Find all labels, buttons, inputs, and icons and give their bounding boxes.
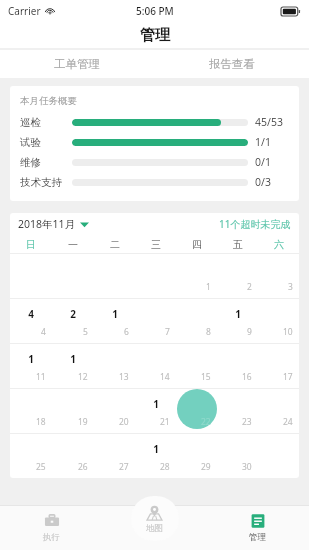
staticText: 工单管理 [54, 57, 100, 71]
button[interactable]: 2 [52, 299, 94, 343]
button[interactable]: 14 [135, 344, 176, 388]
staticText: 22 [201, 416, 211, 428]
staticText: 10 [283, 326, 293, 338]
staticText: 11 [36, 371, 46, 383]
button[interactable]: 27 [94, 434, 135, 478]
staticText: 9 [247, 326, 252, 338]
button[interactable]: 1 [135, 389, 176, 433]
button[interactable]: 19 [52, 389, 94, 433]
staticText: 维修 [20, 156, 41, 169]
button[interactable]: 22 [176, 389, 217, 433]
staticText: 六 [274, 238, 284, 251]
staticText: 17 [283, 371, 293, 383]
staticText: 2018年11月 [18, 217, 76, 231]
button[interactable]: 13 [94, 344, 135, 388]
staticText: 一 [68, 238, 78, 251]
staticText: 执行 [43, 532, 60, 543]
other: 地图 [146, 504, 163, 534]
button[interactable]: 2018年11月 [18, 217, 89, 231]
button[interactable]: 2 [217, 254, 258, 298]
staticText: 19 [78, 416, 88, 428]
button[interactable]: 1 [94, 299, 135, 343]
button[interactable]: 3 [258, 254, 299, 298]
button[interactable]: 18 [10, 389, 52, 433]
button[interactable]: 20 [94, 389, 135, 433]
staticText: 11个超时未完成 [219, 217, 291, 231]
button[interactable]: 4 [10, 299, 52, 343]
button[interactable]: 1 [176, 254, 217, 298]
staticText: 1 [153, 397, 159, 411]
button[interactable]: 10 [258, 299, 299, 343]
button[interactable]: 24 [258, 389, 299, 433]
staticText: 18 [36, 416, 46, 428]
button[interactable]: 25 [10, 434, 52, 478]
button[interactable]: 16 [217, 344, 258, 388]
staticText: 27 [119, 461, 129, 473]
staticText: 5:06 PM [136, 4, 174, 18]
button[interactable]: 报告查看 [154, 50, 309, 78]
staticText: 五 [233, 238, 243, 251]
staticText: 5 [83, 326, 88, 338]
button[interactable]: 执行 [0, 505, 103, 550]
button[interactable]: 1 [135, 434, 176, 478]
staticText: 1 [206, 281, 211, 293]
staticText: 30 [242, 461, 252, 473]
staticText: 1 [28, 352, 34, 366]
staticText: 0/1 [255, 155, 271, 169]
staticText: 巡检 [20, 116, 41, 129]
button[interactable]: 15 [176, 344, 217, 388]
staticText: 1 [70, 352, 76, 366]
button[interactable]: 29 [176, 434, 217, 478]
staticText: 14 [160, 371, 170, 383]
staticText: 三 [151, 238, 161, 251]
button[interactable]: 11个超时未完成 [219, 217, 291, 231]
staticText: 管理 [249, 532, 266, 543]
staticText: 16 [242, 371, 252, 383]
staticText: 15 [201, 371, 211, 383]
button[interactable]: 26 [52, 434, 94, 478]
button[interactable]: 1 [217, 299, 258, 343]
staticText: 管理 [140, 26, 170, 45]
button[interactable]: 1 [10, 344, 52, 388]
staticText: 26 [78, 461, 88, 473]
staticText: 日 [26, 238, 36, 251]
staticText: 1 [153, 442, 159, 456]
staticText: 23 [242, 416, 252, 428]
staticText: 本月任务概要 [20, 95, 77, 107]
staticText: 24 [283, 416, 293, 428]
button[interactable]: 管理 [206, 505, 309, 550]
staticText: 1 [235, 307, 241, 321]
staticText: 6 [124, 326, 129, 338]
button[interactable]: 30 [217, 434, 258, 478]
staticText: 7 [165, 326, 170, 338]
staticText: 28 [160, 461, 170, 473]
button[interactable]: 23 [217, 389, 258, 433]
staticText: 四 [192, 238, 202, 251]
staticText: 2 [247, 281, 252, 293]
staticText: 13 [119, 371, 129, 383]
button[interactable]: 8 [176, 299, 217, 343]
staticText: 3 [288, 281, 293, 293]
staticText: 1 [112, 307, 118, 321]
staticText: 二 [110, 238, 120, 251]
staticText: 25 [36, 461, 46, 473]
staticText: 4 [28, 307, 34, 321]
button[interactable]: 1 [52, 344, 94, 388]
button[interactable]: 地图 [103, 505, 206, 550]
staticText: 1/1 [255, 135, 271, 149]
staticText: 2 [70, 307, 76, 321]
button[interactable]: 17 [258, 344, 299, 388]
staticText: 29 [201, 461, 211, 473]
staticText: 技术支持 [20, 176, 62, 189]
staticText: 8 [206, 326, 211, 338]
staticText: Carrier [8, 4, 41, 18]
staticText: 12 [78, 371, 88, 383]
button[interactable]: 7 [135, 299, 176, 343]
button[interactable]: 工单管理 [0, 50, 154, 78]
staticText: 4 [41, 326, 46, 338]
